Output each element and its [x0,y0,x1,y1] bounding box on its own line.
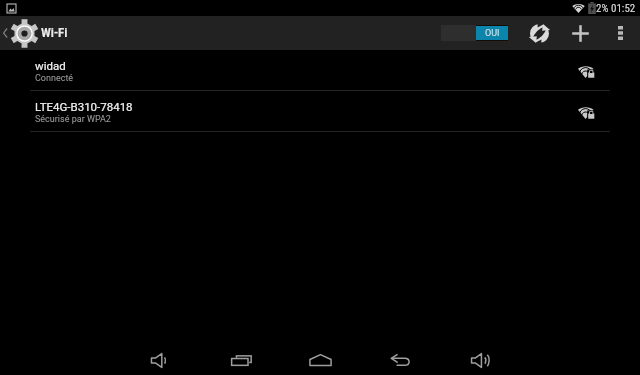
staticText: 2% [596,2,609,15]
staticText: Sécurisé par WPA2 [35,114,111,125]
staticText: LTE4G-B310-78418 [35,100,133,113]
button[interactable]: Recent apps [215,345,267,375]
button[interactable]: Wi-Fi [0,16,120,50]
button[interactable]: WPS [522,16,557,50]
button[interactable]: Wi-Fi switch on [441,25,508,41]
button[interactable]: Home [294,345,346,375]
button[interactable]: Back [374,345,426,375]
button[interactable]: Volume down [132,345,184,375]
button[interactable]: More options [604,16,636,50]
button[interactable]: Volume up [454,345,506,375]
staticText: Wi-Fi [41,25,68,40]
staticText: widad [35,59,66,72]
button[interactable]: Add network [563,16,597,50]
staticText: OUI [485,28,500,39]
button[interactable]: widad [0,50,640,91]
staticText: Connecté [35,73,74,84]
staticText: 01:52 [611,2,636,15]
button[interactable]: LTE4G-B310-78418 [0,91,640,132]
